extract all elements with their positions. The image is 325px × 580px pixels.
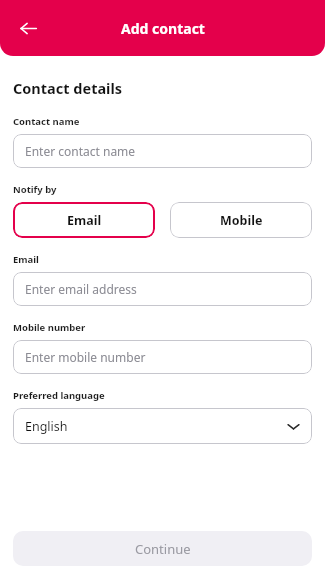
staticText: Contact details <box>13 78 123 98</box>
staticText: Contact name <box>13 115 80 128</box>
staticText: Enter contact name <box>25 143 136 159</box>
button[interactable]: Back <box>10 10 46 46</box>
staticText: Enter mobile number <box>25 349 146 365</box>
staticText: Email <box>13 253 39 266</box>
staticText: Enter email address <box>25 281 137 297</box>
button[interactable]: Email <box>13 202 155 238</box>
staticText: Mobile <box>220 212 263 229</box>
staticText: Preferred language <box>13 389 105 402</box>
staticText: Continue <box>135 540 191 558</box>
staticText: Email <box>67 212 102 229</box>
button[interactable]: English <box>13 408 312 444</box>
button[interactable]: Mobile <box>170 202 312 238</box>
staticText: Notify by <box>13 183 57 196</box>
button[interactable]: Enter mobile number <box>13 340 312 374</box>
staticText: English <box>25 418 68 435</box>
button[interactable]: Continue <box>13 531 312 566</box>
staticText: Mobile number <box>13 321 86 334</box>
button[interactable]: Enter contact name <box>13 134 312 168</box>
staticText: Add contact <box>121 19 205 38</box>
button[interactable]: Enter email address <box>13 272 312 306</box>
